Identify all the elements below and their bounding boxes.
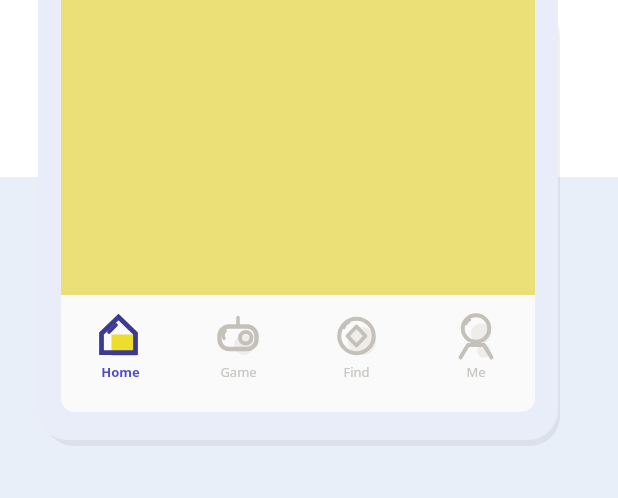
staticText: Find bbox=[343, 363, 370, 381]
other: Find bbox=[332, 311, 382, 361]
staticText: Me bbox=[466, 363, 486, 381]
button[interactable]: Me bbox=[416, 295, 535, 412]
other: Home bbox=[95, 311, 145, 361]
button[interactable]: Game bbox=[179, 295, 297, 412]
button[interactable]: Find bbox=[297, 295, 416, 412]
staticText: Game bbox=[220, 363, 257, 381]
button[interactable]: Home bbox=[61, 295, 179, 412]
other: Game bbox=[213, 311, 263, 361]
other: Me bbox=[451, 311, 501, 361]
staticText: Home bbox=[101, 363, 140, 381]
